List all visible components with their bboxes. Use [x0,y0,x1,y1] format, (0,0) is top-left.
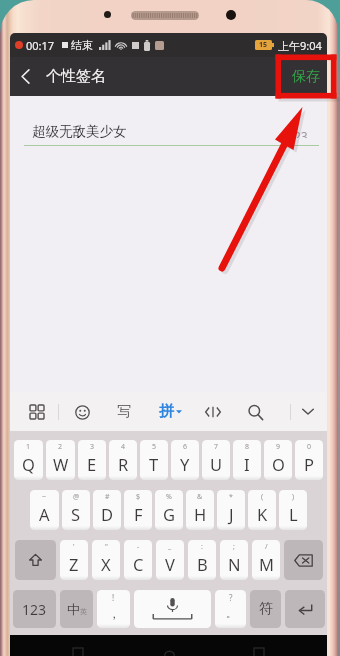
button[interactable]: 5 [140,440,168,480]
staticText: T [149,453,159,475]
staticText: ; [233,542,235,552]
staticText: I [244,453,250,475]
staticText: 3 [90,442,95,452]
button[interactable]: - [124,540,152,580]
staticText: W [53,453,69,475]
button[interactable]: Move cursor [200,399,226,425]
staticText: L [289,503,298,525]
button[interactable]: 保存 [292,57,320,96]
button[interactable]: 写 [111,399,137,425]
staticText: C [133,553,144,575]
staticText: H [194,503,207,525]
button[interactable]: Back [10,57,40,96]
button[interactable]: 6 [171,440,199,480]
staticText: ， [108,606,120,621]
staticText: 2 [58,442,63,452]
staticText: 00:17 [26,38,55,53]
button[interactable]: " [92,540,120,580]
staticText: V [165,553,175,575]
staticText: 拼 [159,402,174,421]
button[interactable]: Layouts [24,399,50,425]
staticText: 结束 [71,38,93,52]
staticText: 英 [80,607,87,616]
button[interactable]: / [252,540,280,580]
button[interactable]: $ [124,490,152,530]
button[interactable]: 符 [250,590,281,628]
staticText: _ [168,542,172,552]
button[interactable]: 2 [46,440,75,480]
staticText: ' [73,542,75,552]
button[interactable]: ; [220,540,248,580]
staticText: 超级无敌美少女 [32,123,127,138]
staticText: X [101,553,111,575]
button[interactable]: 1 [14,440,43,480]
staticText: E [87,453,97,475]
staticText: / [265,542,268,552]
staticText: 符 [259,600,273,618]
staticText: # [105,492,110,502]
staticText: R [118,453,129,475]
button[interactable]: Search [242,399,268,425]
staticText: 8 [245,442,250,452]
staticText: @ [73,492,80,502]
staticText: * [229,492,233,502]
button[interactable]: Space [134,590,211,628]
staticText: ~ [42,492,47,502]
staticText: 15 [259,40,268,50]
button[interactable]: Backspace [284,540,323,580]
staticText: - [137,542,140,552]
button[interactable]: Recents [55,635,101,656]
button[interactable]: 9 [264,440,292,480]
button[interactable]: & [186,490,214,530]
button[interactable]: Shift [15,540,56,580]
staticText: 个性签名 [46,67,106,86]
button[interactable]: Home [146,635,192,656]
staticText: 。 [226,607,236,620]
button[interactable]: 123 [13,590,56,628]
staticText: D [101,503,114,525]
button[interactable]: 7 [202,440,230,480]
button[interactable]: 3 [78,440,106,480]
button[interactable]: : [188,540,216,580]
staticText: % [166,492,172,502]
staticText: 1 [26,442,31,452]
staticText: 0 [307,442,312,452]
button[interactable]: Enter [285,590,325,628]
button[interactable]: % [155,490,183,530]
staticText: 保存 [292,68,320,86]
staticText: ? [229,592,233,603]
staticText: P [304,453,314,475]
staticText: M [259,553,274,575]
button[interactable]: ' [60,540,88,580]
staticText: F [134,503,143,525]
staticText: U [210,453,223,475]
staticText: G [163,503,176,525]
button[interactable]: ! [97,590,130,628]
button[interactable]: ? [215,590,246,628]
button[interactable]: Hide keyboard [291,392,325,431]
button[interactable]: 拼 [159,402,182,421]
staticText: 23 [294,128,308,138]
staticText: : [201,542,203,552]
button[interactable]: # [93,490,121,530]
button[interactable]: _ [156,540,184,580]
button[interactable]: 0 [295,440,323,480]
button[interactable]: 4 [109,440,137,480]
staticText: & [197,492,203,502]
staticText: 上午9:04 [278,38,322,53]
staticText: 4 [121,442,126,452]
staticText: K [257,503,268,525]
staticText: " [105,542,108,552]
button[interactable]: ( [248,490,276,530]
button[interactable]: ) [279,490,307,530]
button[interactable]: Back [236,635,282,656]
button[interactable]: ~ [30,490,59,530]
button[interactable]: * [217,490,245,530]
button[interactable]: 8 [233,440,261,480]
button[interactable]: 中 [60,590,93,628]
button[interactable]: @ [62,490,90,530]
staticText: 9 [276,442,281,452]
staticText: N [228,553,241,575]
staticText: 6 [183,442,188,452]
button[interactable]: Emoji [69,399,95,425]
